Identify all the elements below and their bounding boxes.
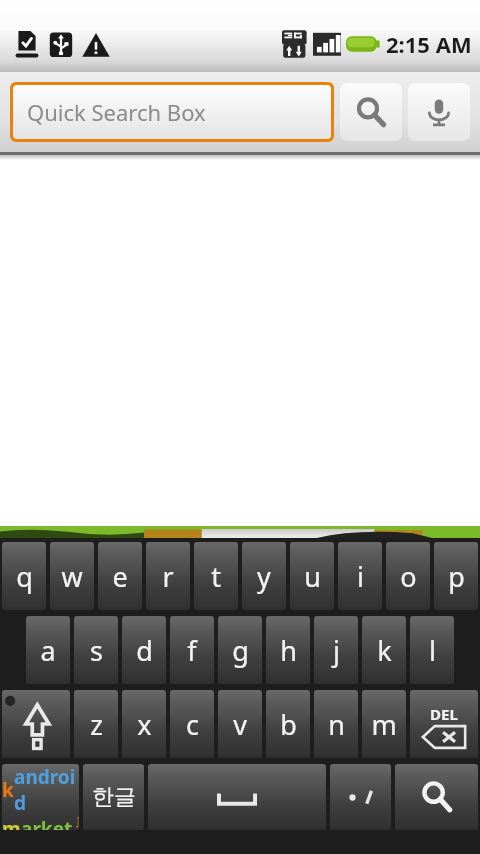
button[interactable]: e <box>98 542 142 610</box>
staticText: c <box>186 706 199 743</box>
button[interactable]: z <box>74 690 118 758</box>
staticText: w <box>61 558 83 595</box>
staticText: 2:15 AM <box>386 29 472 59</box>
button[interactable]: h <box>266 616 310 684</box>
button[interactable]: t <box>194 542 238 610</box>
staticText: s <box>90 632 103 669</box>
staticText: r <box>162 558 174 595</box>
button[interactable]: Shift <box>2 690 70 758</box>
staticText: i <box>357 558 364 595</box>
staticText: DEL <box>430 704 458 724</box>
staticText: t <box>211 558 221 595</box>
button[interactable]: l <box>410 616 454 684</box>
staticText: q <box>16 558 33 595</box>
staticText: u <box>304 558 321 595</box>
staticText: l <box>429 632 436 669</box>
staticText: Quick Search Box <box>27 97 206 127</box>
button[interactable]: r <box>146 542 190 610</box>
staticText: b <box>280 706 297 743</box>
staticText: k <box>377 632 392 669</box>
staticText: android <box>14 764 79 816</box>
button[interactable]: v <box>218 690 262 758</box>
button[interactable]: o <box>386 542 430 610</box>
staticText: x <box>137 706 152 743</box>
button[interactable]: Delete <box>410 690 478 758</box>
staticText: arket <box>21 816 73 830</box>
button[interactable]: x <box>122 690 166 758</box>
staticText: m <box>2 816 21 830</box>
button[interactable]: j <box>314 616 358 684</box>
button[interactable]: 한글 <box>83 764 144 830</box>
staticText: o <box>400 558 417 595</box>
button[interactable]: Period and comma <box>330 764 391 830</box>
button[interactable]: b <box>266 690 310 758</box>
button[interactable]: g <box>218 616 262 684</box>
button[interactable]: u <box>290 542 334 610</box>
button[interactable]: k <box>362 616 406 684</box>
button[interactable]: i <box>338 542 382 610</box>
button[interactable]: a <box>26 616 70 684</box>
staticText: v <box>233 706 247 743</box>
staticText: g <box>232 632 249 669</box>
button[interactable]: w <box>50 542 94 610</box>
button[interactable]: Space <box>148 764 326 830</box>
staticText: d <box>136 632 153 669</box>
staticText: p <box>448 558 465 595</box>
staticText: h <box>280 632 297 669</box>
button[interactable]: c <box>170 690 214 758</box>
staticText: m <box>371 706 397 743</box>
button[interactable]: kandroid market <box>2 764 79 830</box>
button[interactable]: Search <box>395 764 478 830</box>
staticText: z <box>90 706 103 743</box>
button[interactable]: y <box>242 542 286 610</box>
button[interactable]: Search <box>340 83 402 141</box>
staticText: e <box>112 558 128 595</box>
button[interactable]: s <box>74 616 118 684</box>
staticText: k <box>2 777 14 803</box>
staticText: 한글 <box>92 783 136 811</box>
button[interactable]: d <box>122 616 166 684</box>
button[interactable]: f <box>170 616 214 684</box>
button[interactable]: p <box>434 542 478 610</box>
staticText: f <box>187 632 197 669</box>
button[interactable]: m <box>362 690 406 758</box>
staticText: y <box>257 558 271 595</box>
staticText: j <box>333 632 340 669</box>
button[interactable]: Voice search <box>408 83 470 141</box>
staticText: a <box>40 632 56 669</box>
button[interactable]: Quick Search Box <box>13 85 331 139</box>
button[interactable]: n <box>314 690 358 758</box>
button[interactable]: q <box>2 542 46 610</box>
staticText: n <box>328 706 345 743</box>
